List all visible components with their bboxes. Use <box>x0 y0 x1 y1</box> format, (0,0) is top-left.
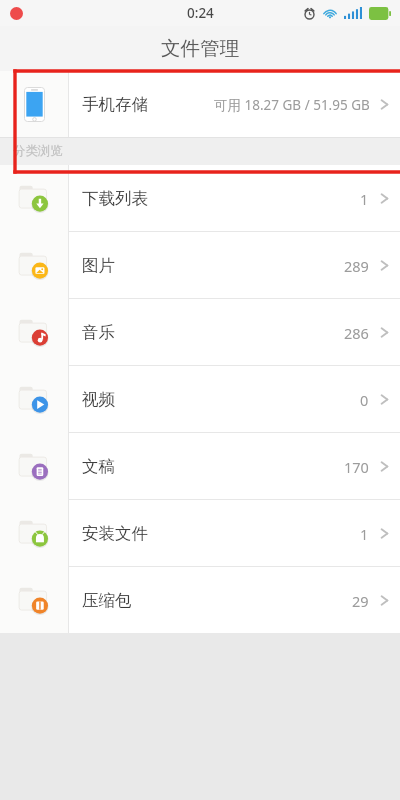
staticText: 视频 <box>82 389 115 410</box>
staticText: 下载列表 <box>82 188 148 209</box>
button[interactable]: 文稿 <box>0 432 400 499</box>
button[interactable]: 安装文件 <box>0 499 400 566</box>
staticText: 0:24 <box>187 4 214 22</box>
staticText: 分类浏览 <box>13 143 63 159</box>
button[interactable]: 视频 <box>0 365 400 432</box>
staticText: 1 <box>360 524 369 544</box>
button[interactable]: 下载列表 <box>0 165 400 231</box>
button[interactable]: 手机存储 <box>0 71 400 137</box>
staticText: 文稿 <box>82 456 115 477</box>
button[interactable]: 图片 <box>0 231 400 298</box>
staticText: 29 <box>352 591 369 611</box>
staticText: 压缩包 <box>82 590 132 611</box>
staticText: 文件管理 <box>161 36 239 61</box>
staticText: 可用 18.27 GB / 51.95 GB <box>214 96 370 114</box>
staticText: 音乐 <box>82 322 115 343</box>
staticText: 图片 <box>82 255 115 276</box>
staticText: 手机存储 <box>82 94 148 115</box>
button[interactable]: 音乐 <box>0 298 400 365</box>
staticText: 286 <box>344 323 369 343</box>
staticText: 0 <box>360 390 369 410</box>
staticText: 170 <box>344 457 369 477</box>
button[interactable]: 压缩包 <box>0 566 400 633</box>
staticText: 289 <box>344 256 369 276</box>
staticText: 1 <box>360 189 369 209</box>
staticText: 安装文件 <box>82 523 148 544</box>
